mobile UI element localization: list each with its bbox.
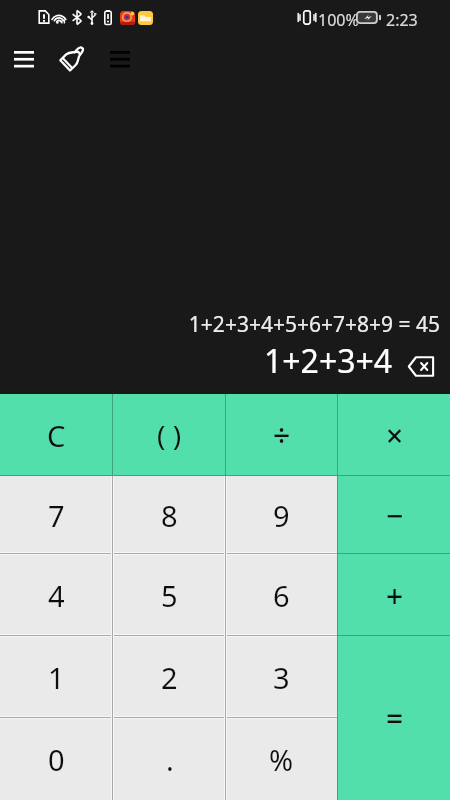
staticText: % (269, 740, 294, 779)
button[interactable]: . (113, 718, 226, 800)
staticText: 100% (318, 9, 359, 31)
staticText: 1+2+3+4+5+6+7+8+9 = 45 (188, 310, 440, 339)
staticText: 6 (273, 576, 290, 615)
button[interactable]: C (0, 394, 113, 476)
staticText: . (166, 740, 174, 779)
staticText: 3 (273, 658, 290, 697)
button[interactable]: 2 (113, 636, 226, 718)
button[interactable]: × (338, 394, 450, 476)
button[interactable]: Backspace (402, 350, 440, 382)
staticText: − (386, 495, 404, 536)
button[interactable]: 0 (0, 718, 113, 800)
staticText: C (47, 416, 66, 455)
button[interactable]: ( ) (113, 394, 226, 476)
button[interactable]: + (338, 554, 450, 636)
button[interactable]: 4 (0, 554, 113, 636)
staticText: 2:23 (386, 9, 418, 31)
button[interactable]: 6 (225, 554, 338, 636)
button[interactable]: History (0, 36, 48, 84)
staticText: ( ) (157, 416, 182, 454)
button[interactable]: = (338, 636, 450, 800)
button[interactable]: 8 (113, 476, 226, 554)
staticText: 1+2+3+4 (264, 339, 393, 383)
staticText: 8 (161, 496, 178, 535)
staticText: 2 (161, 658, 178, 697)
staticText: 4 (48, 576, 65, 615)
staticText: = (386, 698, 404, 739)
button[interactable]: ÷ (225, 394, 338, 476)
button[interactable]: 3 (225, 636, 338, 718)
staticText: 5 (161, 576, 178, 615)
button[interactable]: Theme (48, 36, 96, 84)
staticText: 9 (273, 496, 290, 535)
staticText: 7 (48, 496, 65, 535)
staticText: + (386, 575, 404, 616)
staticText: 0 (48, 740, 65, 779)
button[interactable]: Menu (96, 36, 144, 84)
staticText: 1 (48, 658, 65, 697)
staticText: ÷ (273, 415, 291, 456)
button[interactable]: % (225, 718, 338, 800)
button[interactable]: 9 (225, 476, 338, 554)
button[interactable]: 1 (0, 636, 113, 718)
staticText: × (386, 415, 404, 456)
button[interactable]: 7 (0, 476, 113, 554)
button[interactable]: 5 (113, 554, 226, 636)
button[interactable]: − (338, 476, 450, 554)
